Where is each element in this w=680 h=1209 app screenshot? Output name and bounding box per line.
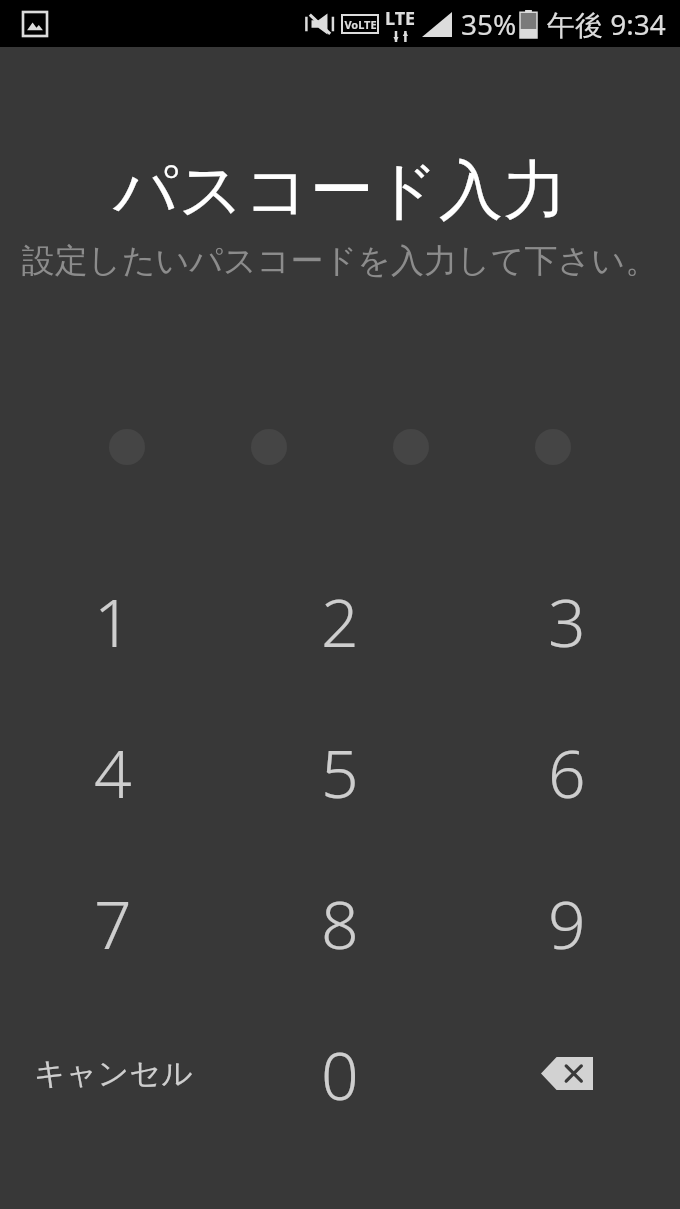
button[interactable]: Backspace: [453, 998, 680, 1149]
staticText: キャンセル: [34, 1054, 193, 1093]
staticText: 8: [321, 878, 359, 968]
staticText: 7: [94, 878, 132, 968]
staticText: 5: [321, 727, 359, 817]
button[interactable]: キャンセル: [0, 998, 226, 1149]
button[interactable]: 2: [226, 545, 453, 696]
staticText: VoLTE: [344, 17, 377, 32]
staticText: 9: [548, 878, 586, 968]
staticText: 午後 9:34: [547, 5, 666, 43]
button[interactable]: 7: [0, 847, 226, 998]
staticText: 2: [321, 576, 359, 666]
button[interactable]: 8: [226, 847, 453, 998]
staticText: 1: [94, 576, 132, 666]
staticText: 設定したいパスコードを入力して下さい。: [0, 240, 680, 282]
staticText: 35%: [461, 5, 517, 43]
button[interactable]: 4: [0, 696, 226, 847]
button[interactable]: 3: [453, 545, 680, 696]
staticText: 3: [548, 576, 586, 666]
button[interactable]: 0: [226, 998, 453, 1149]
staticText: LTE: [385, 6, 416, 31]
staticText: 4: [94, 727, 132, 817]
button[interactable]: 9: [453, 847, 680, 998]
staticText: 6: [548, 727, 586, 817]
button[interactable]: 1: [0, 545, 226, 696]
button[interactable]: 6: [453, 696, 680, 847]
staticText: パスコード入力: [0, 150, 680, 231]
button[interactable]: 5: [226, 696, 453, 847]
staticText: 0: [321, 1029, 359, 1119]
